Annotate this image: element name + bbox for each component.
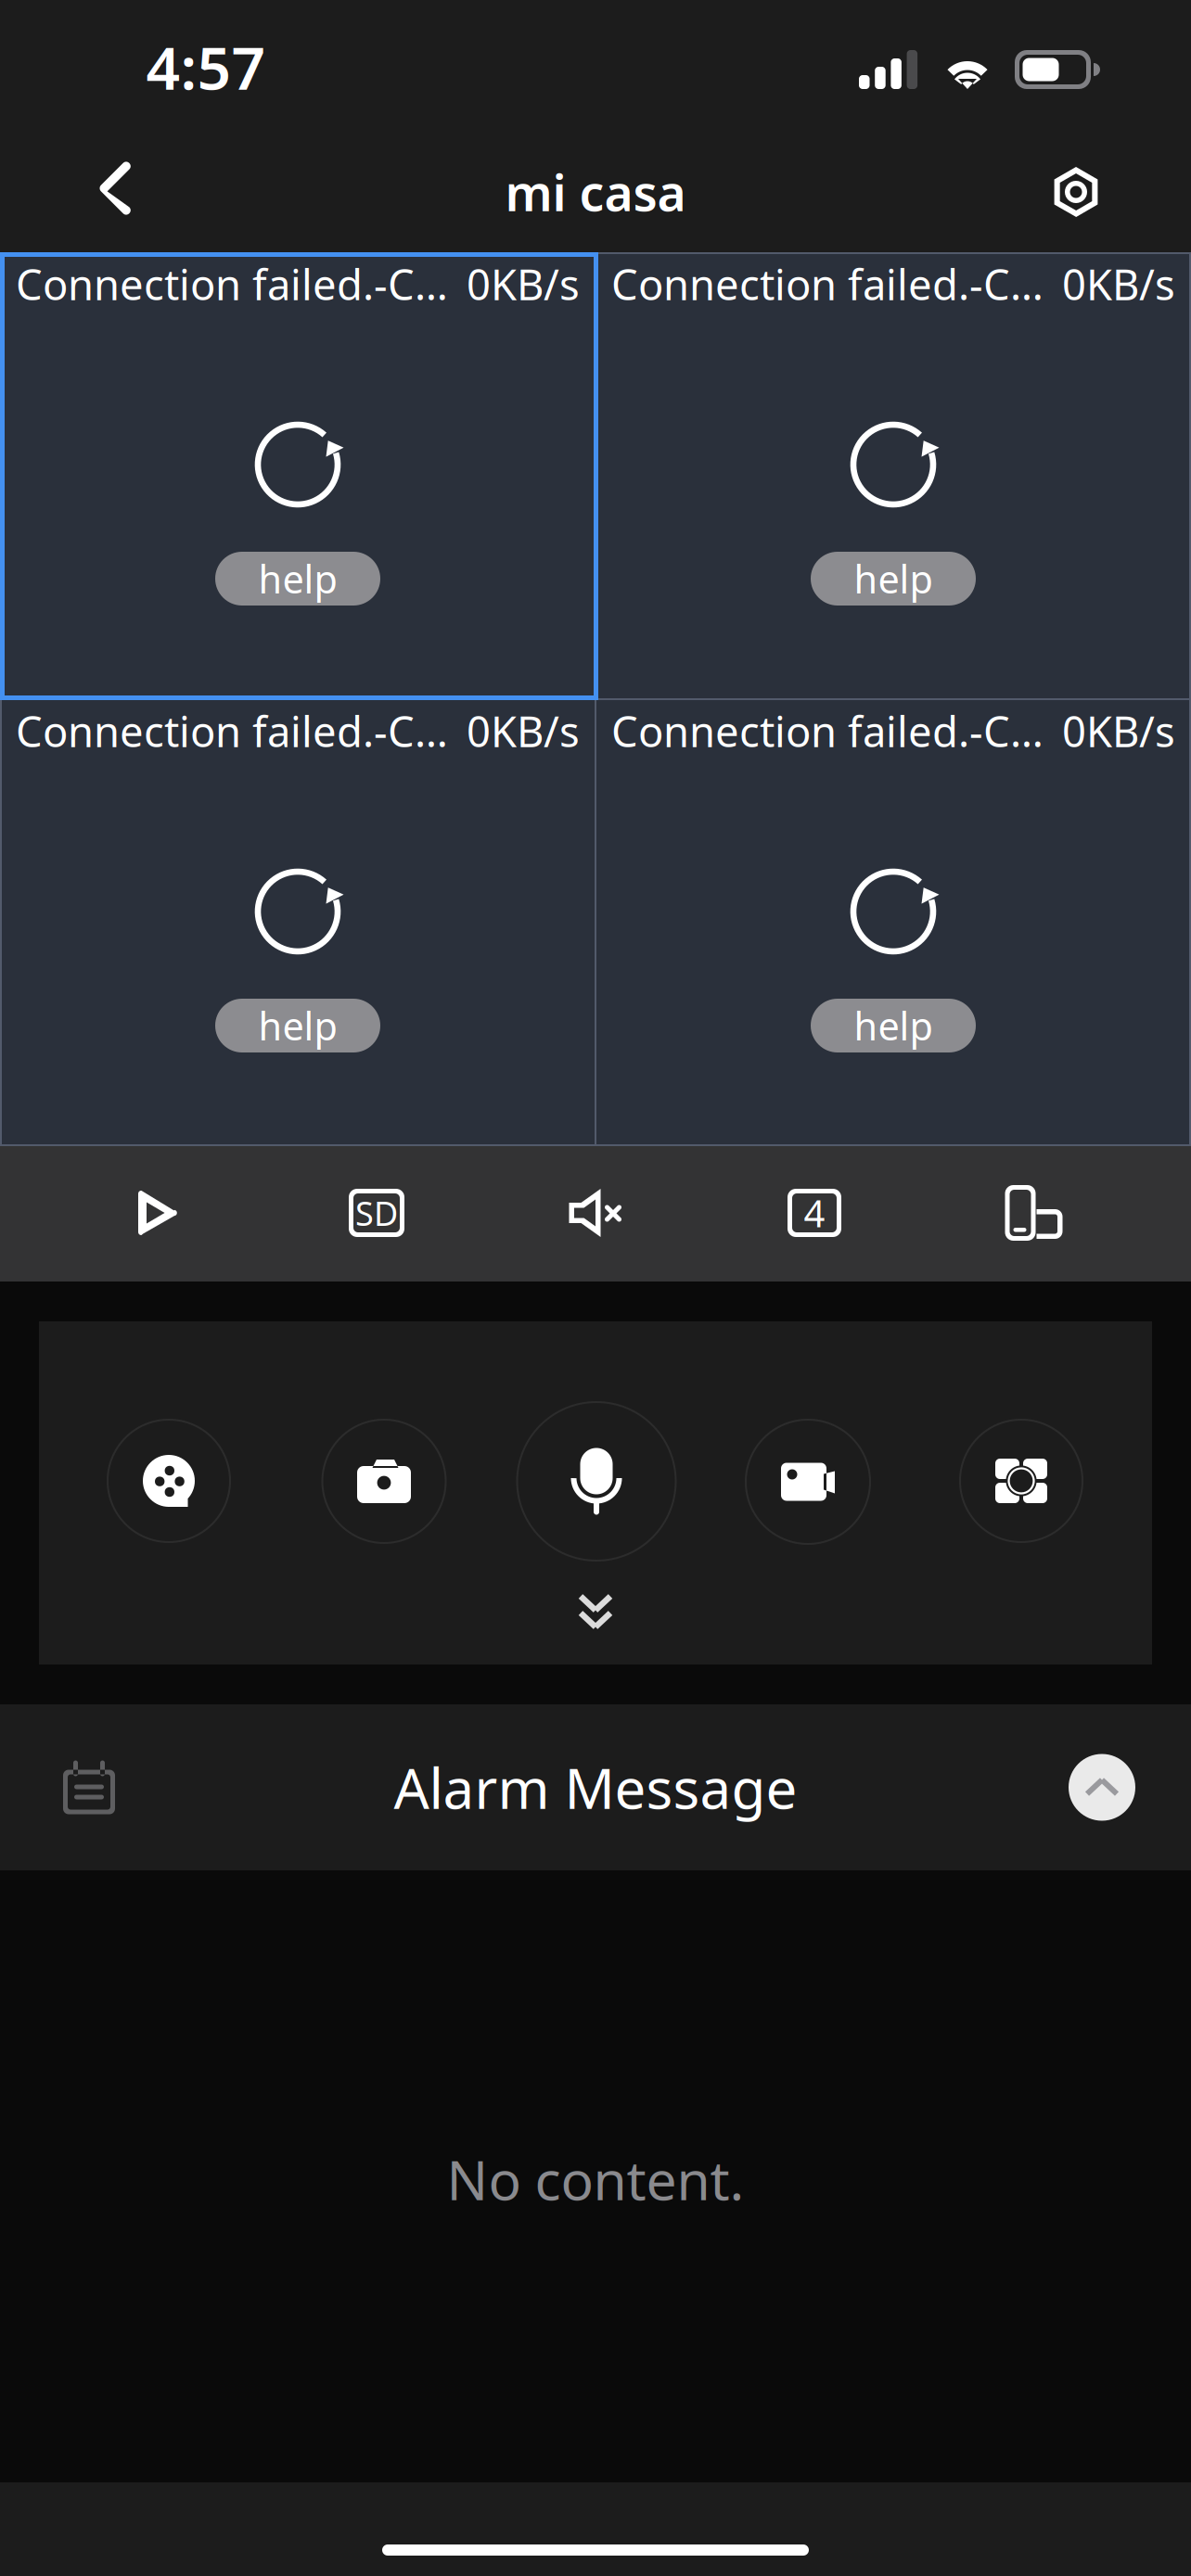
button[interactable]: Connection failed.-Chan… (0, 252, 595, 699)
button[interactable]: Alarm calendar (45, 1743, 134, 1832)
button[interactable]: Back (63, 133, 167, 244)
button[interactable]: Stream quality (267, 1185, 486, 1241)
button[interactable]: Mute (486, 1185, 705, 1241)
staticText: help (854, 553, 933, 604)
button[interactable]: help (215, 999, 380, 1052)
button[interactable]: Connection failed.-Chan… (0, 699, 595, 1146)
staticText: 0KB/s (467, 703, 580, 759)
staticText: Connection failed.-Chan… (611, 256, 1058, 312)
staticText: help (258, 553, 337, 604)
button[interactable]: Rotate screen (924, 1185, 1143, 1241)
staticText: mi casa (505, 159, 686, 225)
button[interactable]: Play (48, 1185, 267, 1241)
button[interactable]: help (215, 552, 380, 606)
staticText: 0KB/s (1062, 703, 1175, 759)
staticText: Connection failed.-Chan… (16, 256, 463, 312)
button[interactable]: Record (745, 1419, 871, 1545)
staticText: Connection failed.-Chan… (611, 703, 1058, 759)
button[interactable]: Playback (107, 1419, 231, 1543)
button[interactable]: Collapse panel (540, 1586, 651, 1641)
button[interactable]: Split view layout (705, 1185, 924, 1241)
button[interactable]: Expand alarm list (1057, 1743, 1146, 1832)
staticText: help (854, 1000, 933, 1051)
staticText: 0KB/s (1062, 256, 1175, 312)
staticText: SD (355, 1191, 398, 1235)
button[interactable]: Connection failed.-Chan… (595, 252, 1191, 699)
staticText: 4:57 (146, 27, 266, 106)
button[interactable]: help (811, 552, 976, 606)
button[interactable]: Connection failed.-Chan… (595, 699, 1191, 1146)
button[interactable]: Settings (1024, 133, 1128, 244)
button[interactable]: PTZ control (959, 1419, 1083, 1543)
button[interactable]: help (811, 999, 976, 1052)
staticText: help (258, 1000, 337, 1051)
staticText: 0KB/s (467, 256, 580, 312)
staticText: Connection failed.-Chan… (16, 703, 463, 759)
button[interactable]: Two-way talk (516, 1401, 677, 1562)
staticText: No content. (447, 2143, 744, 2215)
staticText: Alarm Message (394, 1750, 797, 1824)
staticText: 4 (804, 1188, 825, 1237)
button[interactable]: Snapshot (321, 1419, 447, 1544)
